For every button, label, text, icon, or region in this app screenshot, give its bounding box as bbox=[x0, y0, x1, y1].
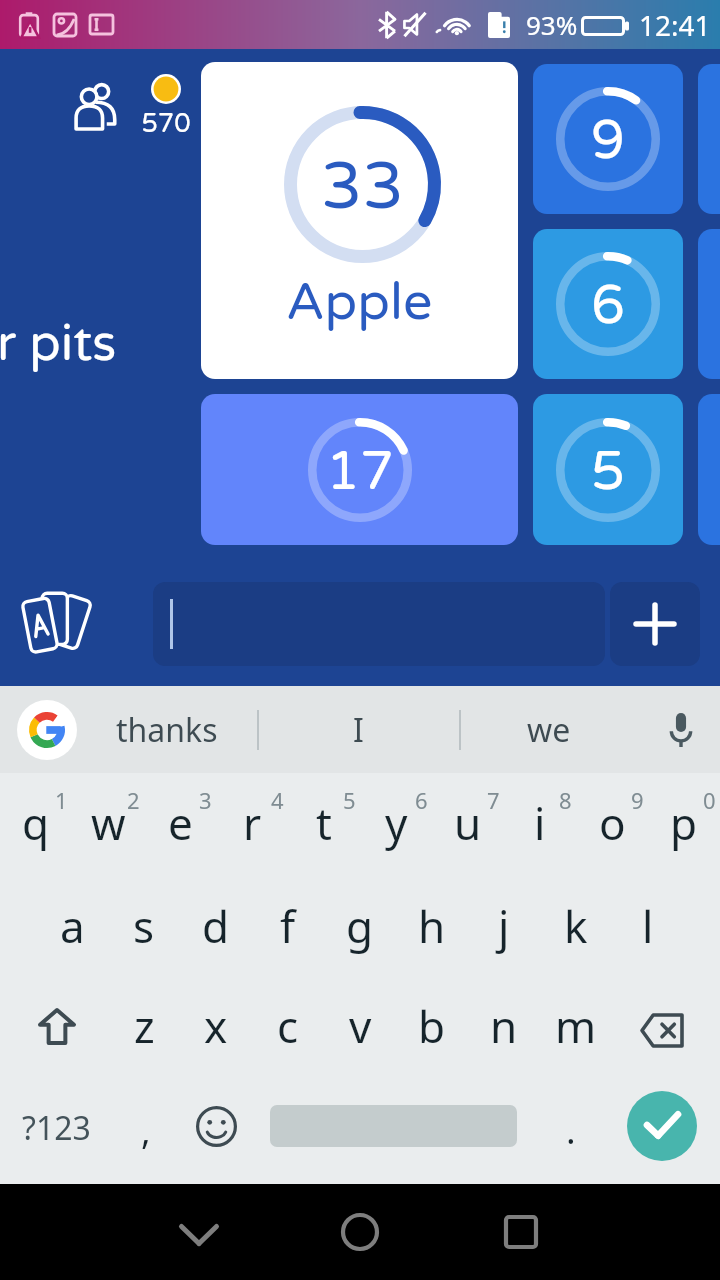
button[interactable]: 6 bbox=[533, 229, 683, 379]
staticText: m bbox=[555, 996, 597, 1056]
button[interactable]: q bbox=[0, 773, 72, 876]
button[interactable]: Back bbox=[163, 1196, 235, 1268]
staticText: 6 bbox=[415, 785, 428, 815]
button[interactable]: Card deck bbox=[20, 590, 94, 654]
button[interactable]: i bbox=[504, 773, 576, 876]
staticText: p bbox=[670, 793, 698, 853]
button[interactable]: t bbox=[288, 773, 360, 876]
button[interactable]: z bbox=[108, 976, 180, 1076]
button[interactable]: f bbox=[252, 876, 324, 976]
button[interactable]: s bbox=[108, 876, 180, 976]
button[interactable]: . bbox=[535, 1076, 607, 1184]
button[interactable]: Emoji bbox=[180, 1076, 252, 1184]
staticText: 8 bbox=[559, 785, 572, 815]
staticText: v bbox=[349, 996, 372, 1056]
button[interactable]: l bbox=[612, 876, 684, 976]
button[interactable]: o bbox=[576, 773, 648, 876]
button[interactable] bbox=[698, 64, 720, 214]
staticText: 7 bbox=[487, 785, 500, 815]
staticText: j bbox=[498, 896, 510, 956]
staticText: 3 bbox=[199, 785, 212, 815]
staticText: n bbox=[490, 996, 518, 1056]
button[interactable]: r bbox=[216, 773, 288, 876]
button[interactable]: w bbox=[72, 773, 144, 876]
staticText: e bbox=[168, 793, 193, 853]
button[interactable]: n bbox=[468, 976, 540, 1076]
staticText: ?123 bbox=[22, 1106, 91, 1150]
staticText: 17 bbox=[326, 439, 394, 504]
button[interactable]: , bbox=[112, 1076, 180, 1184]
button[interactable]: Home bbox=[324, 1196, 396, 1268]
staticText: 5 bbox=[343, 785, 356, 815]
button[interactable]: Recent apps bbox=[485, 1196, 557, 1268]
button[interactable]: ?123 bbox=[0, 1076, 112, 1184]
staticText: z bbox=[134, 996, 155, 1056]
staticText: y bbox=[385, 793, 408, 853]
button[interactable]: Shift bbox=[0, 976, 108, 1076]
staticText: o bbox=[599, 793, 626, 853]
staticText: . bbox=[566, 1106, 576, 1155]
button[interactable]: 33 bbox=[201, 62, 518, 379]
button[interactable]: Add word bbox=[610, 582, 700, 666]
staticText: 570 bbox=[130, 108, 202, 139]
button[interactable]: p bbox=[648, 773, 720, 876]
button[interactable]: g bbox=[324, 876, 396, 976]
staticText: t bbox=[316, 793, 332, 853]
staticText: 1 bbox=[55, 785, 68, 815]
staticText: q bbox=[22, 793, 50, 853]
staticText: i bbox=[534, 793, 546, 853]
staticText: I bbox=[353, 708, 364, 752]
staticText: thanks bbox=[116, 708, 218, 752]
staticText: u bbox=[454, 793, 482, 853]
button[interactable]: a bbox=[36, 876, 108, 976]
staticText: r bbox=[243, 793, 262, 853]
staticText: d bbox=[202, 896, 230, 956]
staticText: 9 bbox=[591, 108, 625, 173]
button[interactable]: x bbox=[180, 976, 252, 1076]
staticText: Apple bbox=[286, 271, 433, 334]
button[interactable]: j bbox=[468, 876, 540, 976]
button[interactable] bbox=[698, 229, 720, 379]
button[interactable]: d bbox=[180, 876, 252, 976]
button[interactable]: m bbox=[540, 976, 612, 1076]
button[interactable]: y bbox=[360, 773, 432, 876]
staticText: a bbox=[60, 896, 85, 956]
staticText: f bbox=[280, 896, 296, 956]
staticText: 33 bbox=[321, 147, 404, 226]
button[interactable]: Voice input bbox=[670, 713, 692, 747]
staticText: 93% bbox=[526, 7, 578, 42]
button[interactable]: h bbox=[396, 876, 468, 976]
staticText: k bbox=[564, 896, 588, 956]
staticText: 2 bbox=[127, 785, 140, 815]
staticText: 0 bbox=[703, 785, 716, 815]
staticText: b bbox=[418, 996, 446, 1056]
staticText: 12:41 bbox=[639, 6, 711, 44]
button[interactable]: 5 bbox=[533, 394, 683, 545]
staticText: 9 bbox=[631, 785, 644, 815]
staticText: , bbox=[141, 1106, 151, 1155]
button[interactable] bbox=[698, 394, 720, 545]
staticText: s bbox=[133, 896, 155, 956]
button[interactable] bbox=[153, 582, 605, 666]
button[interactable]: k bbox=[540, 876, 612, 976]
button[interactable]: u bbox=[432, 773, 504, 876]
staticText: 4 bbox=[271, 785, 284, 815]
button[interactable]: Backspace bbox=[612, 976, 720, 1076]
button[interactable]: v bbox=[324, 976, 396, 1076]
button[interactable]: Google bbox=[17, 700, 77, 760]
button[interactable]: b bbox=[396, 976, 468, 1076]
button[interactable]: 17 bbox=[201, 394, 518, 545]
button[interactable]: Players bbox=[74, 83, 116, 129]
button[interactable]: e bbox=[144, 773, 216, 876]
staticText: x bbox=[204, 996, 228, 1056]
staticText: l bbox=[642, 896, 654, 956]
staticText: 5 bbox=[591, 439, 625, 504]
staticText: g bbox=[346, 896, 374, 956]
staticText: r pits bbox=[0, 314, 117, 374]
staticText: c bbox=[277, 996, 299, 1056]
button[interactable]: Enter bbox=[627, 1091, 697, 1161]
staticText: we bbox=[527, 708, 571, 752]
button[interactable]: c bbox=[252, 976, 324, 1076]
button[interactable]: 9 bbox=[533, 64, 683, 214]
